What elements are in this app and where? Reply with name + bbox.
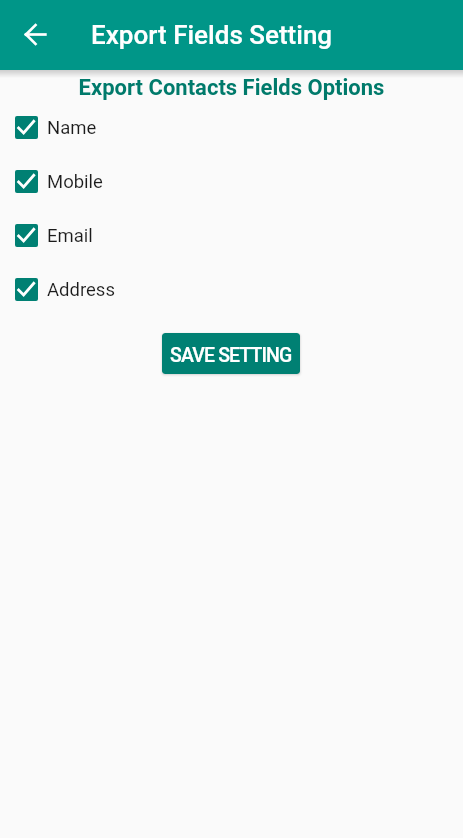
button[interactable]: Mobile: [0, 154, 463, 208]
staticText: Export Contacts Fields Options: [0, 75, 463, 101]
button[interactable]: SAVE SETTING: [162, 333, 300, 374]
staticText: Address: [47, 279, 115, 301]
staticText: SAVE SETTING: [170, 344, 292, 367]
staticText: Mobile: [47, 171, 103, 193]
staticText: Email: [47, 225, 93, 247]
button[interactable]: Address: [0, 262, 463, 316]
staticText: Export Fields Setting: [91, 20, 333, 50]
staticText: Name: [47, 117, 97, 139]
button[interactable]: Navigate up: [12, 11, 59, 58]
button[interactable]: Email: [0, 208, 463, 262]
button[interactable]: Name: [0, 100, 463, 154]
